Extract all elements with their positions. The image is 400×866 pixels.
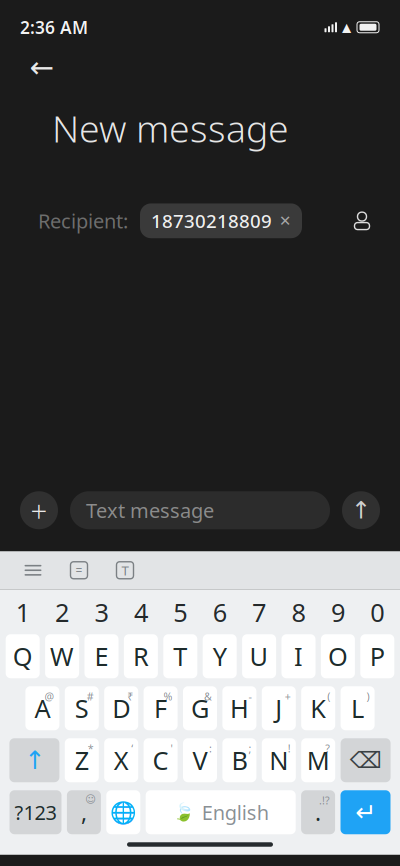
button[interactable]: 9 xyxy=(321,597,355,627)
button[interactable]: Send xyxy=(342,491,380,529)
button[interactable]: ! xyxy=(262,738,296,782)
button[interactable]: Clipboard xyxy=(64,555,94,585)
button[interactable]: Q xyxy=(6,634,40,678)
button[interactable]: % xyxy=(144,686,178,730)
staticText: U xyxy=(250,639,269,673)
staticText: English xyxy=(202,799,269,826)
button[interactable]: Menu xyxy=(18,555,48,585)
button[interactable]: ( xyxy=(301,686,335,730)
staticText: Y xyxy=(213,639,227,673)
button[interactable]: ?123 xyxy=(9,790,61,834)
button[interactable]: ☺ xyxy=(67,790,101,834)
button[interactable]: Text message xyxy=(70,491,330,529)
button[interactable]: : xyxy=(183,738,217,782)
button[interactable]: Add attachment xyxy=(20,491,58,529)
button[interactable]: 0 xyxy=(360,597,394,627)
button[interactable]: R xyxy=(124,634,158,678)
staticText: O xyxy=(328,639,348,673)
button[interactable]: # xyxy=(65,686,99,730)
staticText: B xyxy=(231,743,247,777)
staticText: 5 xyxy=(173,595,187,629)
button[interactable]: 6 xyxy=(203,597,237,627)
staticText: ' xyxy=(171,741,173,755)
staticText: G xyxy=(191,691,209,725)
button[interactable]: 3 xyxy=(84,597,118,627)
button[interactable]: @ xyxy=(25,686,59,730)
staticText: + xyxy=(285,689,291,703)
staticText: ☺ xyxy=(85,793,96,805)
staticText: E xyxy=(94,639,108,673)
staticText: D xyxy=(112,691,130,725)
staticText: 2:36 AM xyxy=(20,16,88,39)
button[interactable]: Choose contact xyxy=(342,201,382,241)
button[interactable]: & xyxy=(183,686,217,730)
staticText: T xyxy=(121,561,128,579)
staticText: 18730218809 xyxy=(151,208,272,233)
button[interactable]: W xyxy=(45,634,79,678)
button[interactable]: Y xyxy=(203,634,237,678)
button[interactable]: 8 xyxy=(281,597,315,627)
staticText: M xyxy=(307,743,330,777)
button[interactable]: ; xyxy=(222,738,256,782)
button[interactable]: Text tools xyxy=(110,555,140,585)
staticText: # xyxy=(87,689,94,703)
button[interactable]: ? xyxy=(301,738,335,782)
staticText: ↑ xyxy=(351,497,371,524)
staticText: X xyxy=(114,743,129,777)
button[interactable]: 1 xyxy=(6,597,40,627)
staticText: 1 xyxy=(16,595,30,629)
staticText: ✕ xyxy=(279,212,291,229)
button[interactable]: Back xyxy=(20,47,64,87)
staticText: ← xyxy=(29,51,54,84)
staticText: N xyxy=(269,743,288,777)
button[interactable]: ₹ xyxy=(104,686,138,730)
staticText: ↑ xyxy=(24,746,45,775)
staticText: A xyxy=(34,691,50,725)
button[interactable]: U xyxy=(242,634,276,678)
button[interactable]: ) xyxy=(341,686,375,730)
staticText: Recipient: xyxy=(38,207,128,234)
button[interactable]: .!? xyxy=(301,790,335,834)
button[interactable]: ↵ xyxy=(340,790,390,834)
button[interactable]: 🌐 xyxy=(106,790,140,834)
staticText: ! xyxy=(288,741,291,755)
staticText: 🍃 xyxy=(173,802,195,822)
button[interactable]: 4 xyxy=(124,597,158,627)
button[interactable]: ↑ xyxy=(9,738,59,782)
staticText: R xyxy=(133,639,149,673)
staticText: 9 xyxy=(331,595,345,629)
button[interactable]: P xyxy=(360,634,394,678)
staticText: P xyxy=(370,639,385,673)
button[interactable]: * xyxy=(65,738,99,782)
button[interactable]: 7 xyxy=(242,597,276,627)
staticText: , xyxy=(81,797,87,827)
button[interactable]: 🍃 xyxy=(146,790,296,834)
staticText: 0 xyxy=(370,595,384,629)
button[interactable]: ' xyxy=(144,738,178,782)
staticText: ↵ xyxy=(355,798,376,827)
staticText: ▲ xyxy=(342,20,351,34)
button[interactable]: ⌫ xyxy=(341,738,391,782)
button[interactable]: + xyxy=(262,686,296,730)
button[interactable]: ‘ xyxy=(104,738,138,782)
staticText: ( xyxy=(327,689,330,703)
staticText: ? xyxy=(325,741,330,755)
staticText: . xyxy=(315,797,321,827)
staticText: 8 xyxy=(291,595,305,629)
button[interactable]: 18730218809 xyxy=(140,203,302,238)
button[interactable]: E xyxy=(84,634,118,678)
staticText: C xyxy=(153,743,169,777)
button[interactable]: T xyxy=(163,634,197,678)
button[interactable]: 2 xyxy=(45,597,79,627)
staticText: 3 xyxy=(94,595,108,629)
staticText: Z xyxy=(75,743,89,777)
button[interactable]: - xyxy=(222,686,256,730)
staticText: Q xyxy=(13,639,33,673)
button[interactable]: I xyxy=(281,634,315,678)
staticText: 2 xyxy=(55,595,69,629)
button[interactable]: 5 xyxy=(163,597,197,627)
staticText: S xyxy=(75,691,89,725)
staticText: 🌐 xyxy=(110,800,137,824)
staticText: % xyxy=(164,689,173,703)
button[interactable]: O xyxy=(321,634,355,678)
